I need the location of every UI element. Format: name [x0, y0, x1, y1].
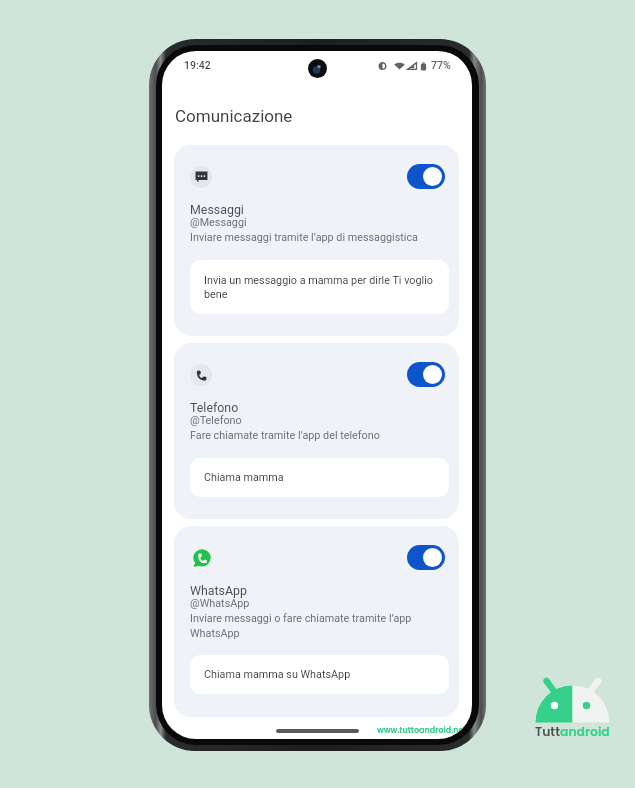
staticText: Inviare messaggi tramite l’app di messag…	[190, 231, 445, 244]
button[interactable]: Invia un messaggio a mamma per dirle Ti …	[190, 260, 449, 314]
staticText: android	[560, 723, 610, 740]
staticText: @WhatsApp	[190, 597, 250, 610]
staticText: Chiama mamma su WhatsApp	[204, 668, 351, 681]
button[interactable]: Attiva WhatsApp	[407, 545, 445, 570]
staticText: Chiama mamma	[204, 471, 284, 484]
staticText: Fare chiamate tramite l’app del telefono	[190, 429, 445, 442]
button[interactable]: Attiva Telefono	[407, 362, 445, 387]
button[interactable]: Attiva Messaggi	[174, 145, 459, 336]
staticText: Tutt	[535, 723, 560, 740]
button[interactable]: Attiva Telefono	[174, 343, 459, 519]
staticText: Inviare messaggi o fare chiamate tramite…	[190, 612, 445, 639]
staticText: 77%	[431, 59, 451, 71]
staticText: WhatsApp	[190, 583, 248, 598]
staticText: @Telefono	[190, 414, 242, 427]
button[interactable]: Chiama mamma su WhatsApp	[190, 655, 449, 694]
staticText: 19:42	[184, 59, 211, 71]
button[interactable]: Attiva Messaggi	[407, 164, 445, 189]
button[interactable]: Attiva WhatsApp	[174, 526, 459, 717]
staticText: www.tuttoandroid.net	[377, 725, 467, 736]
staticText: Invia un messaggio a mamma per dirle Ti …	[204, 274, 437, 301]
staticText: Telefono	[190, 400, 239, 415]
staticText: @Messaggi	[190, 216, 247, 229]
staticText: Comunicazione	[175, 106, 293, 126]
staticText: Messaggi	[190, 202, 244, 217]
button[interactable]: Chiama mamma	[190, 458, 449, 497]
